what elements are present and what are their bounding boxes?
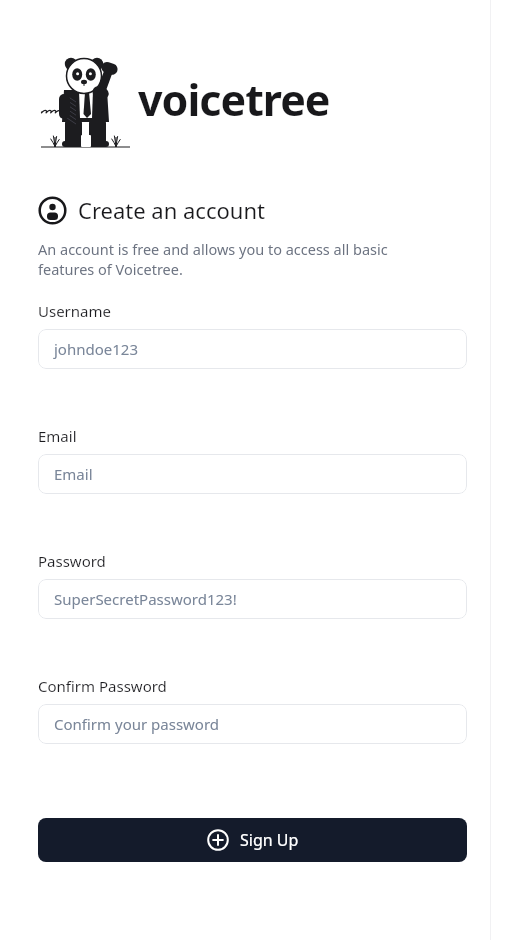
staticText: An account is free and allows you to acc…: [38, 239, 443, 280]
staticText: Confirm Password: [38, 676, 167, 696]
button[interactable]: SuperSecretPassword123!: [38, 579, 467, 619]
staticText: SuperSecretPassword123!: [54, 589, 237, 609]
button[interactable]: johndoe123: [38, 329, 467, 369]
button[interactable]: Sign Up: [38, 818, 467, 862]
staticText: Username: [38, 301, 111, 321]
staticText: Email: [54, 464, 93, 484]
staticText: Sign Up: [240, 829, 299, 851]
button[interactable]: Confirm your password: [38, 704, 467, 744]
button[interactable]: Email: [38, 454, 467, 494]
other: Account: [38, 196, 67, 225]
staticText: johndoe123: [54, 339, 138, 359]
staticText: Confirm your password: [54, 714, 220, 734]
staticText: Password: [38, 551, 106, 571]
staticText: Email: [38, 426, 77, 446]
staticText: Create an account: [78, 195, 265, 225]
staticText: voicetree: [138, 70, 330, 129]
